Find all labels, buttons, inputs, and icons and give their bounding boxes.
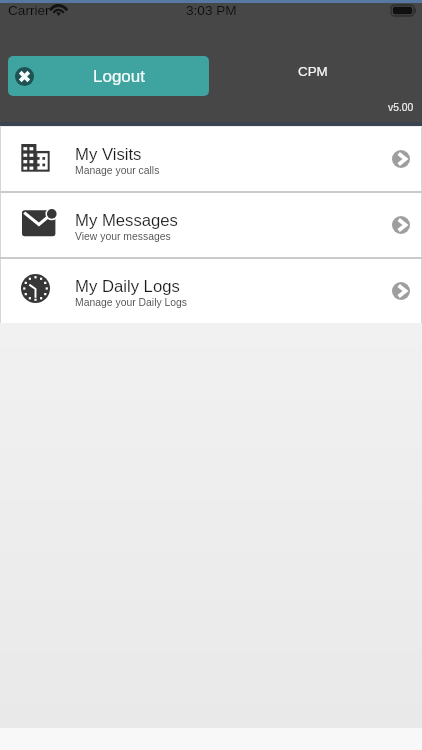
staticText: v5.00 — [388, 102, 414, 114]
other: Open My Daily Logs — [392, 282, 410, 300]
staticText: Logout — [93, 67, 145, 86]
staticText: Manage your Daily Logs — [75, 297, 188, 309]
staticText: CPM — [298, 64, 328, 79]
button[interactable]: Logout — [8, 56, 209, 96]
staticText: View your messages — [75, 231, 171, 243]
staticText: My Messages — [75, 211, 178, 230]
other: Open My Messages — [392, 216, 410, 234]
button[interactable]: My Daily Logs — [1, 259, 421, 323]
button[interactable]: My Visits — [1, 127, 421, 191]
staticText: My Daily Logs — [75, 277, 180, 296]
staticText: 3:03 PM — [186, 3, 237, 18]
button[interactable]: My Messages — [1, 193, 421, 257]
staticText: My Visits — [75, 145, 142, 164]
staticText: Manage your calls — [75, 165, 160, 177]
staticText: Carrier — [8, 3, 50, 18]
other: Open My Visits — [392, 150, 410, 168]
